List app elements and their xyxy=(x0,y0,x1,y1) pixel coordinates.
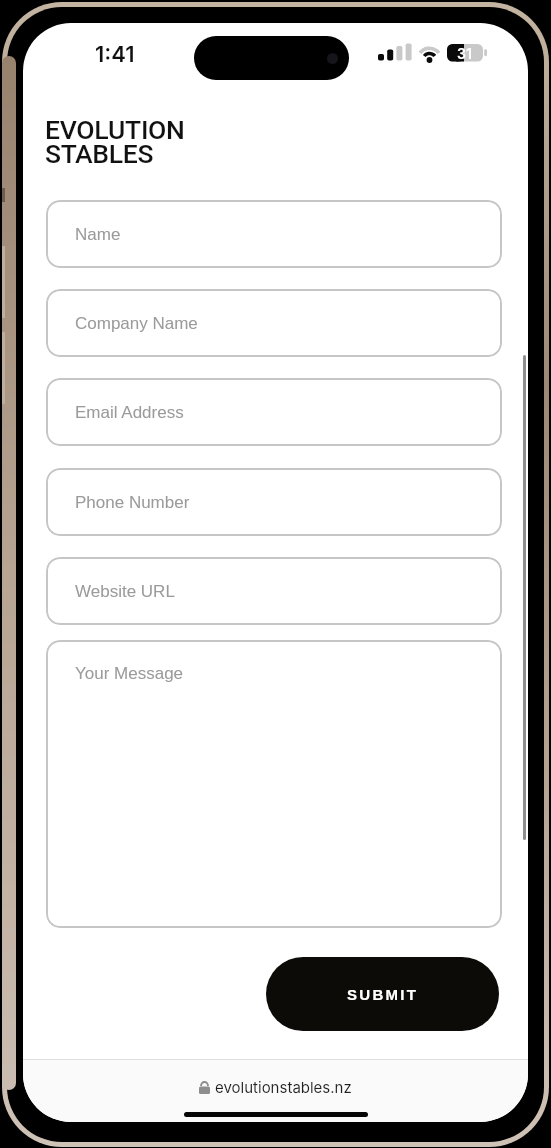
staticText: 1:41 xyxy=(95,41,135,68)
staticText: Phone Number xyxy=(75,493,190,512)
button[interactable]: SUBMIT xyxy=(266,957,499,1031)
button[interactable]: Your Message xyxy=(46,640,502,928)
button[interactable]: Email Address xyxy=(46,378,502,446)
button[interactable]: Company Name xyxy=(46,289,502,357)
staticText: Email Address xyxy=(75,403,184,422)
staticText: EVOLUTION STABLES xyxy=(45,114,185,170)
button[interactable]: evolutionstables.nz xyxy=(23,1075,528,1099)
button[interactable]: Website URL xyxy=(46,557,502,625)
button[interactable]: Phone Number xyxy=(46,468,502,536)
button[interactable]: Name xyxy=(46,200,502,268)
staticText: Your Message xyxy=(75,664,184,683)
staticText: 31 xyxy=(457,45,472,62)
staticText: SUBMIT xyxy=(347,986,419,1003)
staticText: Name xyxy=(75,225,121,244)
staticText: Website URL xyxy=(75,582,175,601)
staticText: Company Name xyxy=(75,314,198,333)
staticText: evolutionstables.nz xyxy=(215,1078,352,1096)
